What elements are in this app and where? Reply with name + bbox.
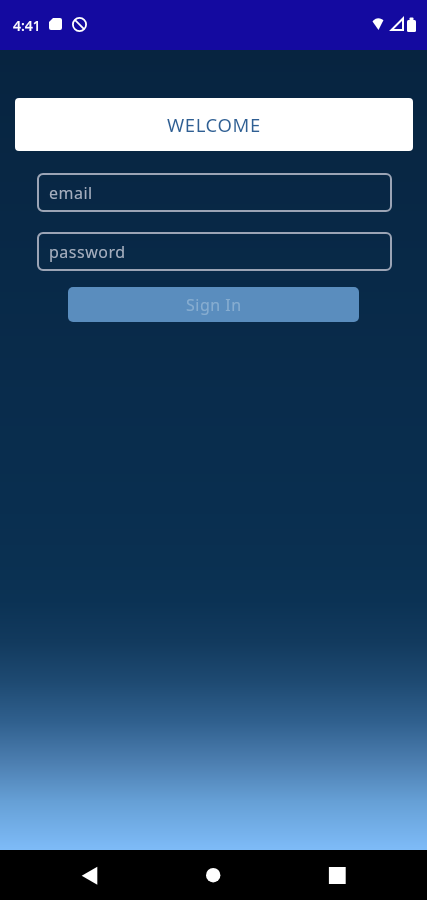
button[interactable]: password bbox=[37, 232, 392, 271]
button[interactable]: email bbox=[37, 173, 392, 212]
button[interactable] bbox=[285, 850, 427, 900]
staticText: Sign In bbox=[186, 294, 242, 316]
staticText: WELCOME bbox=[167, 112, 261, 137]
staticText: email bbox=[49, 182, 93, 204]
button[interactable]: WELCOME bbox=[15, 98, 413, 151]
staticText: 4:41 bbox=[13, 16, 41, 35]
button[interactable] bbox=[143, 850, 285, 900]
button[interactable] bbox=[0, 850, 143, 900]
button[interactable]: Sign In bbox=[68, 287, 359, 322]
staticText: password bbox=[49, 241, 126, 263]
